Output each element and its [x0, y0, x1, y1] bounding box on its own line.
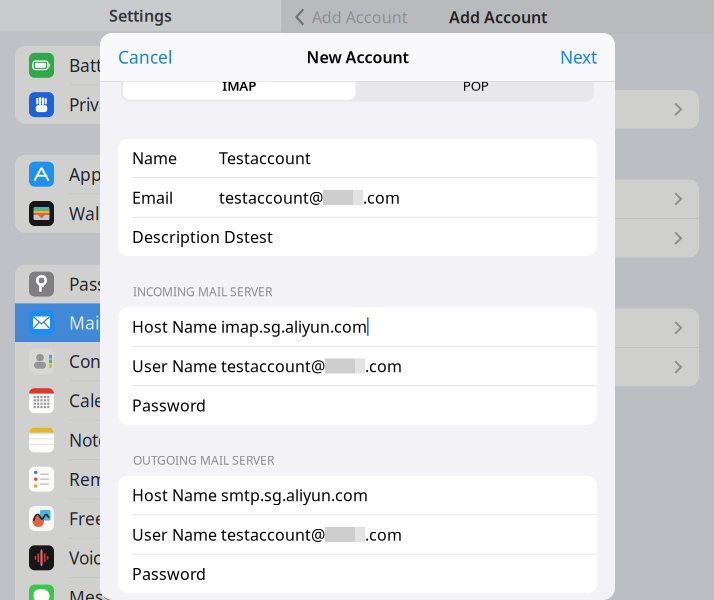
staticText: .com — [363, 187, 400, 208]
button[interactable]: Passwords — [15, 265, 269, 303]
staticText: Messages — [69, 586, 150, 600]
button[interactable]: User Name — [118, 515, 597, 554]
button[interactable]: Battery — [15, 46, 269, 85]
staticText: User Name — [132, 355, 217, 376]
staticText: POP — [463, 77, 489, 94]
button[interactable]: Email — [118, 178, 597, 217]
button[interactable]: Calendar — [15, 381, 269, 420]
staticText: App Store — [69, 163, 150, 186]
staticText: .com — [365, 524, 402, 545]
button[interactable]: Privacy & Security — [15, 85, 269, 124]
staticText: IMAP — [222, 77, 256, 94]
button[interactable]: App Store — [15, 155, 269, 193]
staticText: OUTGOING MAIL SERVER — [133, 452, 274, 468]
staticText: Contacts — [69, 350, 139, 373]
staticText: Calendar — [69, 389, 143, 412]
button[interactable]: Contacts — [15, 342, 269, 381]
button[interactable]: Voice Memos — [15, 538, 269, 577]
staticText: Description — [132, 226, 220, 247]
staticText: Password — [132, 395, 206, 416]
staticText: imap.sg.aliyun.com — [221, 316, 367, 337]
staticText: Notes — [69, 428, 116, 451]
staticText: Password — [132, 563, 206, 584]
button[interactable]: Messages — [15, 578, 269, 600]
staticText: Battery — [69, 54, 128, 77]
staticText: Passwords — [69, 273, 155, 296]
button[interactable]: POP — [357, 70, 594, 102]
staticText: Privacy & Security — [69, 93, 214, 116]
staticText: testaccount@ — [219, 187, 323, 208]
staticText: Next — [560, 45, 597, 68]
staticText: Freeform — [69, 507, 144, 530]
staticText: testaccount@ — [221, 355, 325, 376]
button[interactable]: Reminders — [15, 460, 269, 498]
button[interactable]: Notes — [15, 421, 269, 459]
button[interactable]: User Name — [118, 347, 597, 385]
button[interactable]: Cancel — [100, 33, 190, 81]
button[interactable]: Password — [118, 554, 597, 593]
staticText: Cancel — [118, 45, 172, 68]
staticText: Reminders — [69, 468, 157, 491]
staticText: INCOMING MAIL SERVER — [133, 284, 272, 300]
staticText: .com — [365, 355, 402, 376]
staticText: Add Account — [312, 6, 408, 28]
button[interactable]: Freeform — [15, 499, 269, 538]
button[interactable]: Mail — [15, 303, 269, 342]
button[interactable]: Password — [118, 386, 597, 425]
staticText: Add Account — [449, 6, 547, 28]
staticText: testaccount@ — [221, 524, 325, 545]
button[interactable]: Host Name — [118, 476, 597, 514]
staticText: Host Name — [132, 484, 217, 506]
staticText: New Account — [306, 46, 408, 68]
staticText: Name — [132, 147, 177, 169]
staticText: Host Name — [132, 316, 217, 337]
staticText: Wallet — [69, 202, 119, 225]
staticText: Testaccount — [219, 147, 311, 169]
staticText: Dstest — [224, 226, 273, 247]
button[interactable]: Next — [542, 33, 615, 81]
staticText: Settings — [109, 5, 172, 26]
button[interactable]: Name — [118, 139, 597, 177]
staticText: User Name — [132, 524, 217, 545]
button[interactable]: Host Name — [118, 307, 597, 346]
button[interactable]: Description — [118, 217, 597, 256]
staticText: Voice Memos — [69, 546, 176, 569]
staticText: Email — [132, 187, 173, 208]
button[interactable]: Wallet — [15, 194, 269, 233]
button[interactable]: IMAP — [121, 70, 357, 102]
staticText: smtp.sg.aliyun.com — [221, 484, 368, 506]
staticText: Mail — [69, 311, 103, 334]
